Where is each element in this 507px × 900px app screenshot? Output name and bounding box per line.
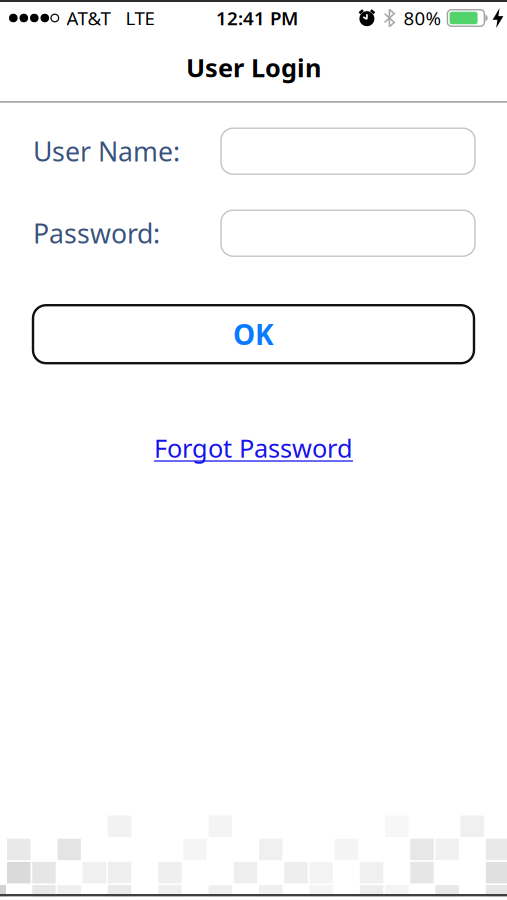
button[interactable]: OK bbox=[33, 305, 474, 363]
staticText: User Login bbox=[186, 51, 321, 84]
staticText: Password: bbox=[33, 215, 160, 251]
button[interactable]: Forgot Password bbox=[154, 431, 353, 465]
staticText: OK bbox=[233, 316, 274, 353]
staticText: Forgot Password bbox=[154, 431, 353, 465]
staticText: User Name: bbox=[33, 133, 180, 169]
staticText: 12:41 PM bbox=[216, 6, 298, 30]
button[interactable] bbox=[221, 128, 475, 174]
button[interactable] bbox=[221, 210, 475, 256]
staticText: 80% bbox=[403, 6, 441, 30]
staticText: LTE bbox=[126, 6, 155, 30]
staticText: AT&T bbox=[67, 6, 111, 30]
